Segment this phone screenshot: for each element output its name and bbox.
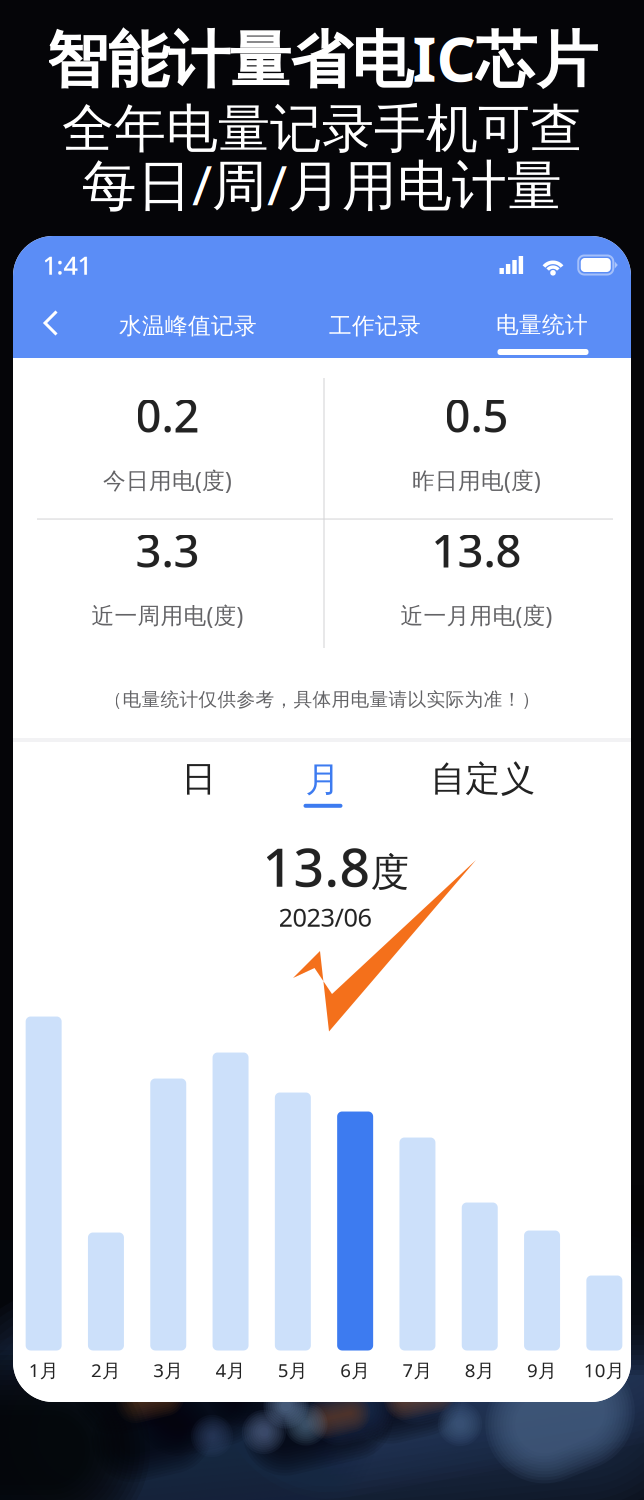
staticText: 日	[181, 758, 216, 800]
button[interactable]: 自定义	[418, 751, 548, 807]
button[interactable]: Back	[28, 298, 74, 348]
staticText: 3月	[153, 1358, 183, 1382]
staticText: 水温峰值记录	[119, 312, 257, 340]
staticText: 近一周用电(度)	[91, 600, 243, 630]
button[interactable]: 工作记录	[315, 301, 435, 351]
staticText: 月	[305, 758, 340, 801]
staticText: 智能计量省电IC芯片	[46, 17, 597, 99]
button[interactable]: 月	[275, 753, 371, 813]
staticText: 2月	[91, 1358, 121, 1382]
staticText: 9月	[527, 1358, 557, 1382]
staticText: 今日用电(度)	[103, 465, 232, 495]
staticText: 昨日用电(度)	[412, 465, 541, 495]
staticText: 度	[370, 849, 409, 896]
staticText: 13.8	[431, 520, 521, 580]
staticText: 每日/周/月用电计量	[82, 148, 562, 220]
button[interactable]: 电量统计	[477, 290, 607, 360]
staticText: 全年电量记录手机可查	[62, 97, 582, 161]
staticText: 0.2	[135, 385, 199, 445]
staticText: 2023/06	[278, 900, 371, 934]
staticText: 近一月用电(度)	[400, 600, 552, 630]
staticText: 10月	[584, 1358, 625, 1382]
button[interactable]: 水温峰值记录	[108, 301, 268, 351]
staticText: （电量统计仅供参考，具体用电量请以实际为准！）	[103, 688, 540, 711]
staticText: 1:41	[42, 248, 91, 282]
staticText: 6月	[340, 1358, 370, 1382]
staticText: 8月	[465, 1358, 495, 1382]
staticText: 0.5	[444, 385, 508, 445]
staticText: 5月	[278, 1358, 308, 1382]
staticText: 4月	[215, 1358, 245, 1382]
staticText: 1月	[29, 1358, 59, 1382]
staticText: 自定义	[430, 758, 535, 800]
staticText: 7月	[402, 1358, 432, 1382]
staticText: 工作记录	[329, 312, 421, 340]
staticText: 13.8	[262, 831, 370, 901]
staticText: 电量统计	[496, 311, 588, 339]
staticText: 3.3	[135, 520, 199, 580]
button[interactable]: 日	[151, 751, 247, 807]
